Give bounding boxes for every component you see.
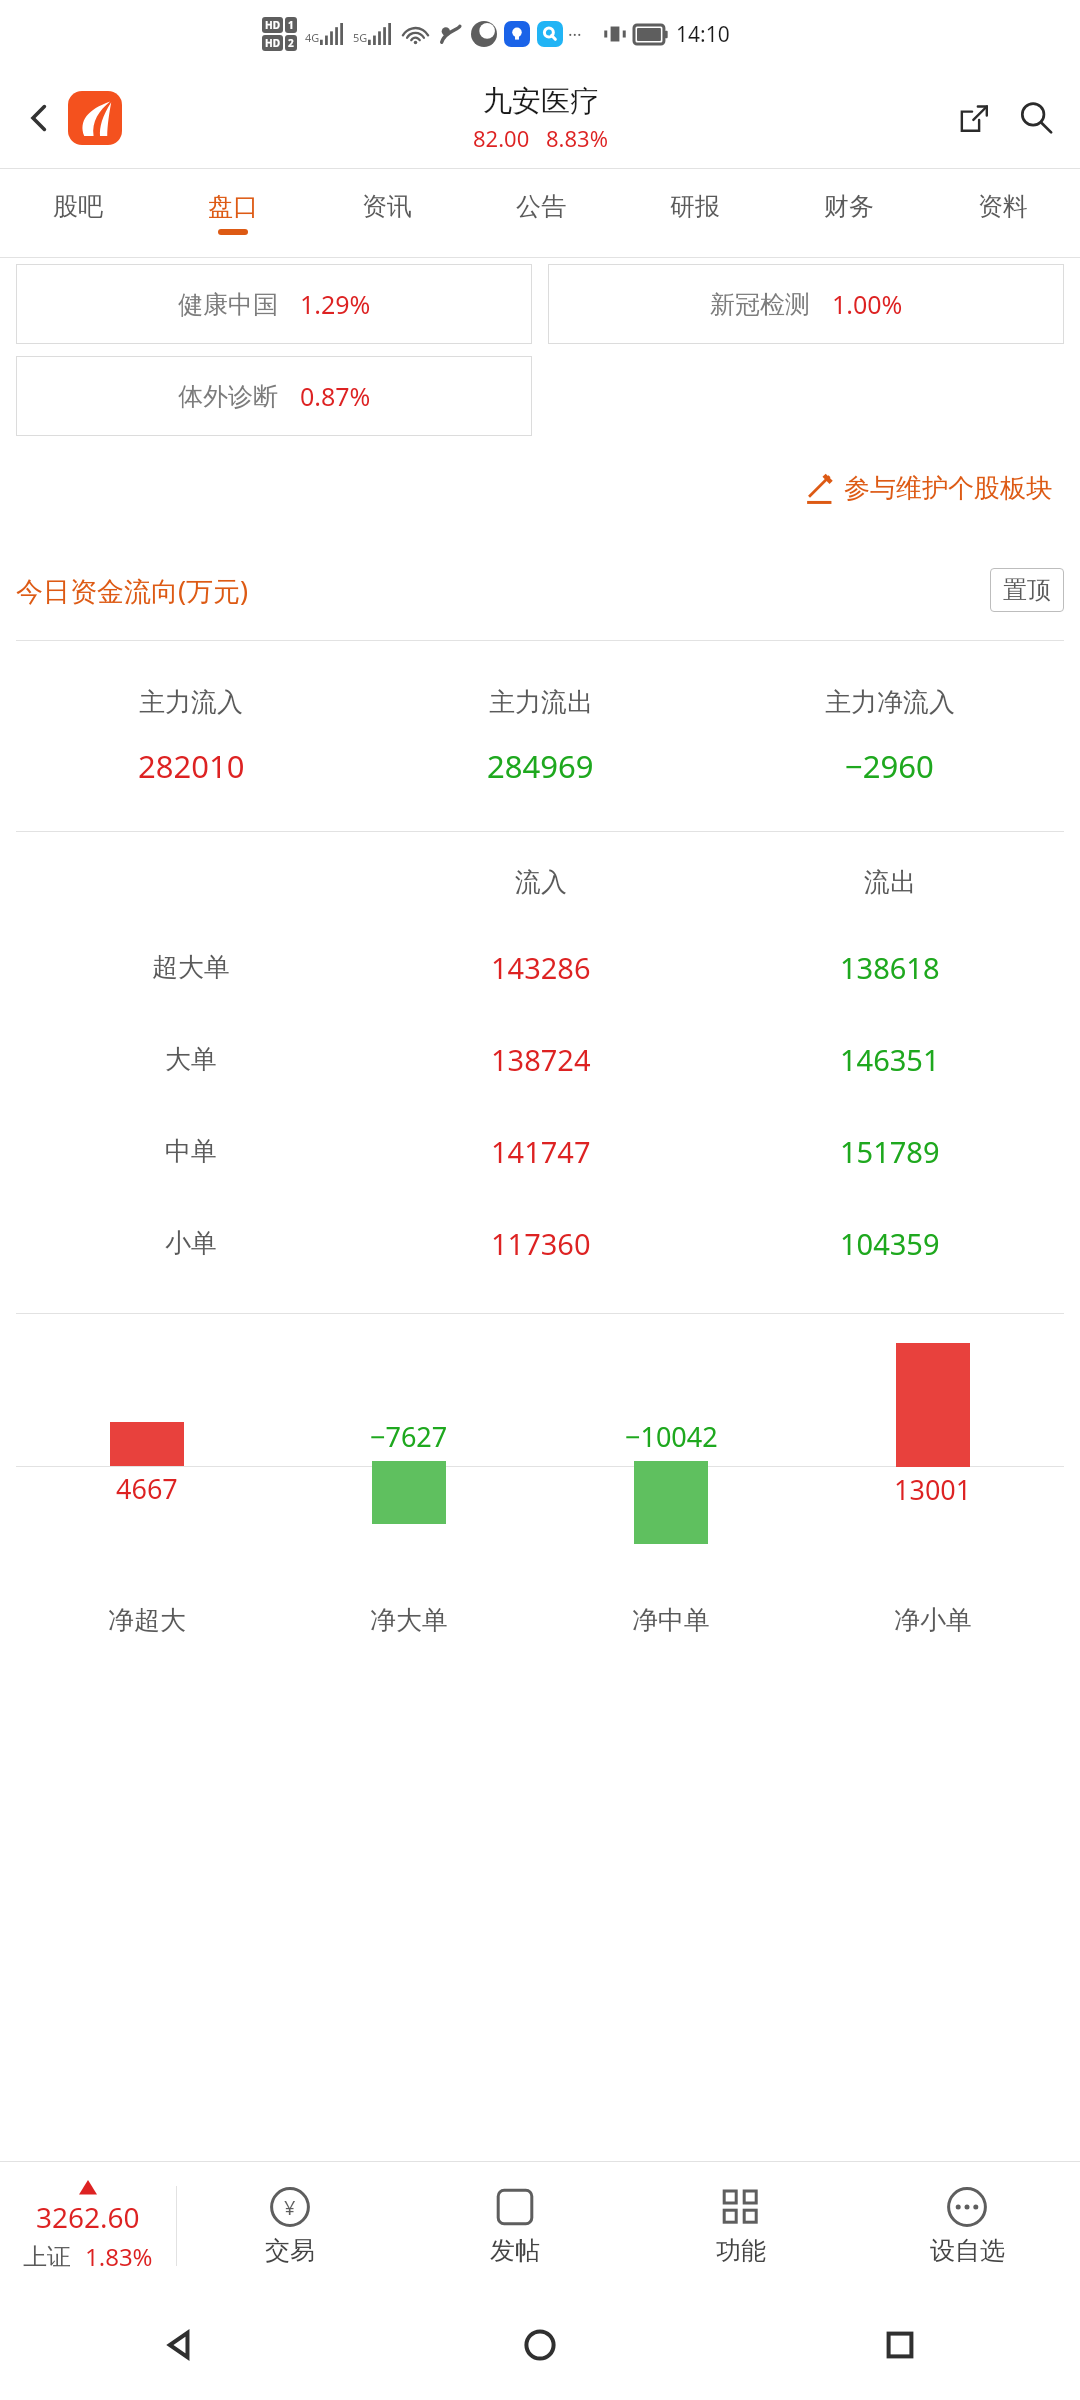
staticText: 资讯 (362, 191, 412, 222)
staticText: 功能 (716, 2235, 766, 2266)
staticText: 置顶 (1003, 575, 1051, 605)
button[interactable]: 资料 (926, 169, 1080, 257)
staticText: 体外诊断 (178, 381, 278, 412)
staticText: 13001 (894, 1471, 972, 1508)
staticText: 净超大 (108, 1604, 186, 1637)
staticText: 1.29% (300, 287, 371, 321)
button[interactable]: 资讯 (310, 169, 464, 257)
staticText: 公告 (516, 191, 566, 222)
button[interactable]: 股吧 (0, 169, 155, 257)
staticText: 净大单 (370, 1604, 448, 1637)
staticText: 流入 (515, 866, 567, 899)
button[interactable]: 主力流入 (16, 686, 366, 787)
staticText: 上证 (23, 2242, 71, 2272)
staticText: 九安医疗 (483, 83, 599, 120)
staticText: 主力流出 (489, 686, 593, 719)
button[interactable]: Home (360, 2290, 720, 2400)
staticText: −10042 (625, 1418, 718, 1455)
staticText: 2 (288, 36, 294, 50)
staticText: 健康中国 (178, 289, 278, 320)
button[interactable]: 公告 (464, 169, 618, 257)
button[interactable]: 功能 (628, 2162, 854, 2290)
button[interactable]: 小单 (16, 1197, 1064, 1289)
button[interactable]: 主力流出 (366, 686, 715, 787)
button[interactable]: 超大单 (16, 921, 1064, 1013)
button[interactable]: Back (0, 2290, 360, 2400)
button[interactable]: 体外诊断 (16, 356, 532, 436)
button[interactable]: 参与维护个股板块 (794, 464, 1060, 513)
staticText: HD (265, 36, 280, 50)
staticText: 0.87% (300, 379, 371, 413)
button[interactable]: Share (948, 92, 1000, 144)
staticText: −7627 (370, 1418, 448, 1455)
staticText: 5G (353, 30, 368, 45)
staticText: ··· (568, 23, 582, 46)
staticText: 284969 (487, 745, 594, 787)
staticText: 151789 (840, 1132, 940, 1171)
button[interactable]: 健康中国 (16, 264, 532, 344)
staticText: 1.83% (85, 2240, 153, 2273)
staticText: 4667 (116, 1470, 178, 1507)
staticText: 资料 (978, 191, 1028, 222)
staticText: 净中单 (632, 1604, 710, 1637)
staticText: 小单 (165, 1227, 217, 1260)
staticText: 研报 (670, 191, 720, 222)
staticText: 交易 (265, 2235, 315, 2266)
button[interactable]: 中单 (16, 1105, 1064, 1197)
button[interactable]: ¥ (177, 2162, 402, 2290)
button[interactable]: 财务 (772, 169, 926, 257)
staticText: 净小单 (894, 1604, 972, 1637)
staticText: 今日资金流向(万元) (16, 572, 249, 609)
staticText: 143286 (491, 948, 591, 987)
staticText: 主力净流入 (825, 686, 955, 719)
staticText: 1 (288, 18, 294, 32)
staticText: 超大单 (152, 951, 230, 984)
staticText: 股吧 (53, 191, 103, 222)
staticText: 4G (305, 30, 320, 45)
staticText: 3262.60 (36, 2198, 140, 2236)
staticText: 146351 (840, 1040, 940, 1079)
button[interactable]: 盘口 (155, 169, 310, 257)
staticText: 138618 (840, 948, 940, 987)
button[interactable]: 新冠检测 (548, 264, 1064, 344)
button[interactable]: 发帖 (402, 2162, 628, 2290)
staticText: 282010 (138, 745, 245, 787)
staticText: HD (265, 18, 280, 32)
staticText: 设自选 (930, 2235, 1005, 2266)
staticText: −2960 (845, 745, 934, 787)
staticText: 盘口 (208, 191, 258, 222)
staticText: 中单 (165, 1135, 217, 1168)
button[interactable] (68, 91, 122, 145)
button[interactable]: 主力净流入 (715, 686, 1064, 787)
button[interactable]: Recent apps (720, 2290, 1080, 2400)
staticText: 141747 (491, 1132, 591, 1171)
button[interactable]: 设自选 (854, 2162, 1080, 2290)
button[interactable]: 置顶 (990, 568, 1064, 612)
staticText: 117360 (491, 1224, 591, 1263)
staticText: 大单 (165, 1043, 217, 1076)
staticText: 14:10 (676, 20, 730, 49)
staticText: 发帖 (490, 2235, 540, 2266)
staticText: 8.83% (546, 123, 608, 153)
button[interactable]: Search (1010, 92, 1062, 144)
button[interactable]: Back (16, 95, 62, 141)
staticText: 参与维护个股板块 (844, 472, 1052, 505)
button[interactable]: 大单 (16, 1013, 1064, 1105)
staticText: 新冠检测 (710, 289, 810, 320)
staticText: 104359 (840, 1224, 940, 1263)
button[interactable]: 研报 (618, 169, 772, 257)
staticText: 138724 (491, 1040, 591, 1079)
staticText: 1.00% (832, 287, 903, 321)
staticText: ¥ (284, 2194, 296, 2221)
staticText: 流出 (864, 866, 916, 899)
staticText: 主力流入 (139, 686, 243, 719)
staticText: 82.00 (473, 123, 530, 153)
button[interactable]: 3262.60 (0, 2162, 176, 2290)
staticText: 财务 (824, 191, 874, 222)
